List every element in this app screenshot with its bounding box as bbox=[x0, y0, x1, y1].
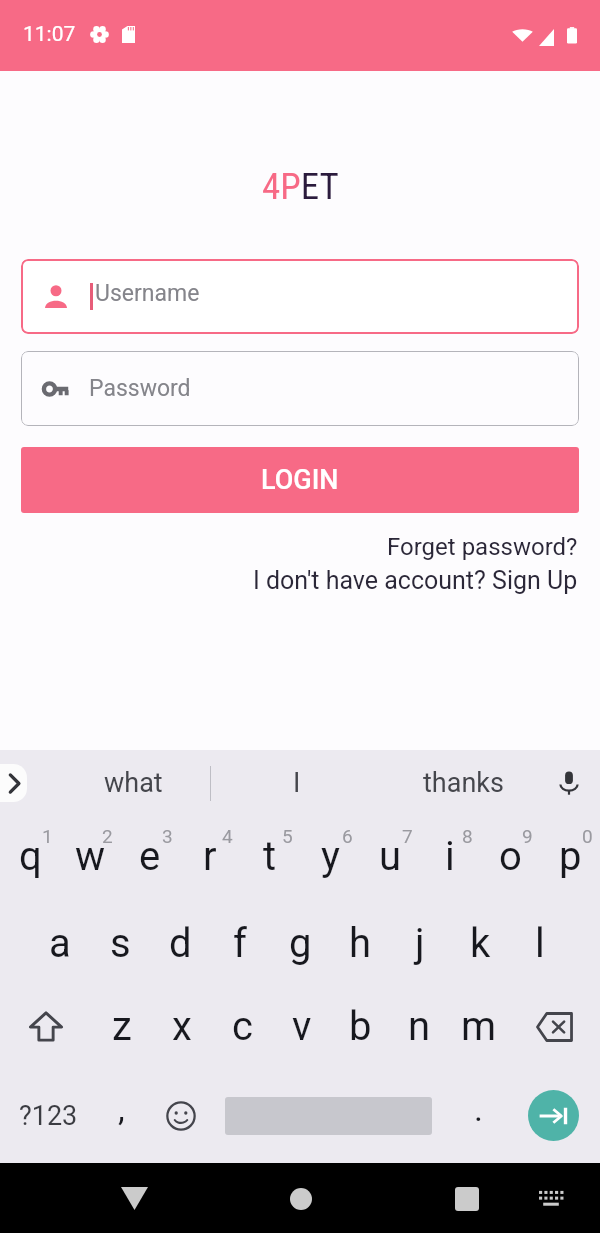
button[interactable]: 3 bbox=[120, 816, 180, 902]
button[interactable]: l bbox=[510, 902, 570, 985]
button[interactable]: 4 bbox=[180, 816, 240, 902]
button[interactable]: d bbox=[150, 902, 210, 985]
staticText: 5 bbox=[282, 825, 293, 847]
staticText: c bbox=[232, 1003, 253, 1050]
button[interactable]: 0 bbox=[540, 816, 600, 902]
staticText: I don't have account? Sign Up bbox=[253, 566, 578, 595]
button[interactable]: f bbox=[210, 902, 270, 985]
staticText: o bbox=[499, 833, 522, 880]
staticText: d bbox=[169, 920, 192, 967]
staticText: f bbox=[233, 920, 247, 967]
button[interactable]: 2 bbox=[60, 816, 120, 902]
staticText: 6 bbox=[342, 825, 353, 847]
staticText: e bbox=[139, 833, 161, 880]
staticText: r bbox=[203, 833, 217, 880]
button[interactable]: h bbox=[330, 902, 390, 985]
button[interactable]: x bbox=[152, 985, 212, 1068]
button[interactable]: Password bbox=[21, 351, 579, 426]
button[interactable]: g bbox=[270, 902, 330, 985]
button[interactable]: Next bbox=[514, 1068, 600, 1163]
button[interactable]: Keyboard bbox=[522, 1170, 579, 1227]
staticText: 9 bbox=[522, 825, 533, 847]
staticText: w bbox=[75, 833, 106, 880]
button[interactable]: 5 bbox=[240, 816, 300, 902]
staticText: 4 bbox=[222, 825, 233, 847]
staticText: 2 bbox=[102, 825, 113, 847]
button[interactable]: Recents bbox=[438, 1170, 495, 1227]
button[interactable]: m bbox=[449, 985, 508, 1068]
button[interactable]: I bbox=[239, 750, 355, 816]
button[interactable]: k bbox=[450, 902, 510, 985]
staticText: 3 bbox=[162, 825, 173, 847]
button[interactable]: v bbox=[272, 985, 331, 1068]
button[interactable]: Forget password? bbox=[387, 533, 578, 561]
staticText: I bbox=[293, 767, 301, 799]
staticText: x bbox=[172, 1003, 192, 1050]
staticText: z bbox=[112, 1003, 132, 1050]
staticText: b bbox=[349, 1003, 372, 1050]
staticText: LOGIN bbox=[261, 464, 339, 496]
button[interactable]: 1 bbox=[0, 816, 60, 902]
staticText: l bbox=[535, 920, 545, 967]
button[interactable]: b bbox=[331, 985, 390, 1068]
button[interactable]: 8 bbox=[420, 816, 480, 902]
button[interactable]: 9 bbox=[480, 816, 540, 902]
staticText: Username bbox=[95, 280, 200, 307]
staticText: h bbox=[349, 920, 372, 967]
button[interactable]: Space bbox=[215, 1068, 442, 1163]
staticText: thanks bbox=[423, 767, 504, 799]
button[interactable]: a bbox=[30, 902, 90, 985]
button[interactable]: c bbox=[212, 985, 272, 1068]
button[interactable]: Home bbox=[272, 1170, 329, 1227]
staticText: p bbox=[559, 833, 582, 880]
staticText: 11:07 bbox=[23, 22, 76, 47]
button[interactable]: Emoji bbox=[146, 1068, 215, 1163]
button[interactable]: I don't have account? Sign Up bbox=[253, 566, 578, 595]
button[interactable]: Back bbox=[106, 1170, 163, 1227]
button[interactable]: . bbox=[442, 1068, 514, 1163]
staticText: m bbox=[461, 1003, 497, 1050]
button[interactable]: what bbox=[27, 750, 239, 816]
button[interactable]: , bbox=[96, 1068, 146, 1163]
button[interactable]: 7 bbox=[360, 816, 420, 902]
button[interactable]: Username bbox=[21, 259, 579, 334]
button[interactable]: thanks bbox=[355, 750, 572, 816]
staticText: j bbox=[415, 920, 425, 967]
staticText: Password bbox=[89, 375, 191, 402]
button[interactable]: j bbox=[390, 902, 450, 985]
staticText: . bbox=[474, 1089, 483, 1129]
staticText: 0 bbox=[582, 825, 593, 847]
staticText: y bbox=[321, 833, 340, 880]
button[interactable]: n bbox=[390, 985, 449, 1068]
staticText: s bbox=[110, 920, 131, 967]
staticText: g bbox=[289, 920, 312, 967]
button[interactable]: s bbox=[90, 902, 150, 985]
staticText: 1 bbox=[42, 825, 53, 847]
button[interactable]: 6 bbox=[300, 816, 360, 902]
button[interactable]: LOGIN bbox=[21, 447, 579, 513]
staticText: v bbox=[292, 1003, 312, 1050]
staticText: a bbox=[49, 920, 71, 967]
staticText: 8 bbox=[462, 825, 473, 847]
staticText: q bbox=[19, 833, 42, 880]
staticText: what bbox=[104, 767, 163, 799]
button[interactable]: Backspace bbox=[508, 985, 600, 1068]
staticText: 7 bbox=[402, 825, 413, 847]
button[interactable]: ?123 bbox=[0, 1068, 96, 1163]
button[interactable]: More suggestions bbox=[0, 764, 27, 802]
staticText: Forget password? bbox=[387, 533, 578, 561]
staticText: t bbox=[263, 833, 277, 880]
staticText: k bbox=[470, 920, 491, 967]
staticText: i bbox=[445, 833, 455, 880]
staticText: , bbox=[118, 1089, 125, 1129]
staticText: n bbox=[408, 1003, 431, 1050]
staticText: 4PET bbox=[262, 165, 339, 208]
staticText: ?123 bbox=[19, 1100, 78, 1132]
button[interactable]: Shift bbox=[0, 985, 92, 1068]
button[interactable]: z bbox=[92, 985, 152, 1068]
staticText: u bbox=[379, 833, 402, 880]
button[interactable]: Voice input bbox=[538, 750, 600, 816]
